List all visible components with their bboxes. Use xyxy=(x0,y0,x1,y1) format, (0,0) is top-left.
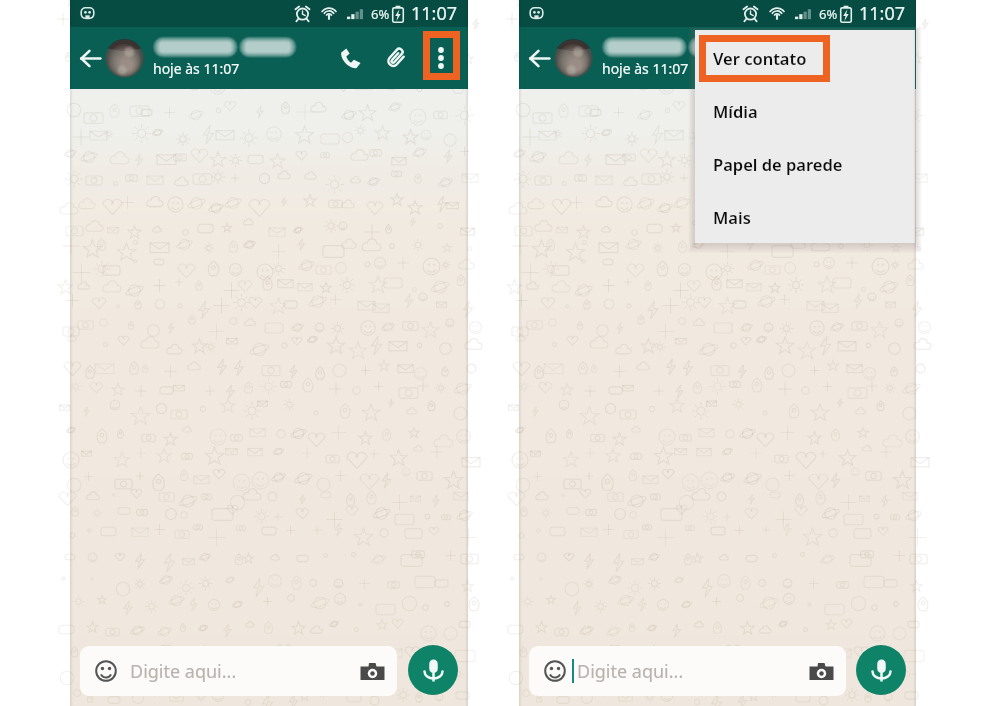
button[interactable]: Papel de parede xyxy=(695,137,915,190)
staticText: 6% xyxy=(819,5,838,23)
staticText: Digite aqui... xyxy=(130,659,237,684)
button[interactable]: Record voice message xyxy=(408,645,458,695)
button[interactable]: Call xyxy=(326,27,374,89)
button[interactable]: Digite aqui... xyxy=(80,646,397,696)
button[interactable]: Back xyxy=(525,27,553,89)
staticText: 11:07 xyxy=(859,1,906,26)
staticText: Ver contato xyxy=(713,47,807,69)
button[interactable]: More options xyxy=(418,27,464,89)
staticText: hoje às 11:07 xyxy=(602,59,689,78)
button[interactable]: More options xyxy=(866,27,912,89)
button[interactable]: Record voice message xyxy=(856,645,906,695)
staticText: hoje às 11:07 xyxy=(153,59,240,78)
staticText: Digite aqui... xyxy=(577,659,684,684)
staticText: Papel de parede xyxy=(713,153,843,175)
button[interactable]: Mídia xyxy=(695,84,915,137)
staticText: Mídia xyxy=(713,100,758,122)
staticText: 11:07 xyxy=(411,1,458,26)
button[interactable]: Attach xyxy=(822,27,866,89)
button[interactable]: Back xyxy=(76,27,104,89)
button[interactable]: Mais xyxy=(695,190,915,243)
button[interactable]: Call xyxy=(774,27,822,89)
button[interactable]: Digite aqui... xyxy=(529,646,846,696)
staticText: Mais xyxy=(713,206,751,228)
staticText: 6% xyxy=(371,5,390,23)
button[interactable]: Attach xyxy=(374,27,418,89)
button[interactable]: Ver contato xyxy=(695,31,915,84)
